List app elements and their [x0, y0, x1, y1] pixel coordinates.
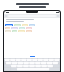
button[interactable]: Tag — [5, 27, 10, 29]
button[interactable]: Tag — [29, 24, 35, 26]
button[interactable]: Tag — [11, 27, 18, 29]
button[interactable]: Tag — [26, 30, 32, 32]
button[interactable]: Tag — [22, 24, 28, 26]
button[interactable]: Tag — [14, 24, 21, 26]
button[interactable]: Tag — [12, 30, 17, 32]
button[interactable]: Tag — [19, 27, 25, 29]
button[interactable]: Tag — [5, 30, 11, 32]
button[interactable]: Suggestion — [30, 56, 35, 57]
button[interactable]: Tag — [26, 27, 32, 29]
button[interactable]: Tag — [5, 24, 13, 26]
button[interactable]: Keyboard — [4, 58, 60, 71]
button[interactable]: Tag — [18, 30, 25, 32]
